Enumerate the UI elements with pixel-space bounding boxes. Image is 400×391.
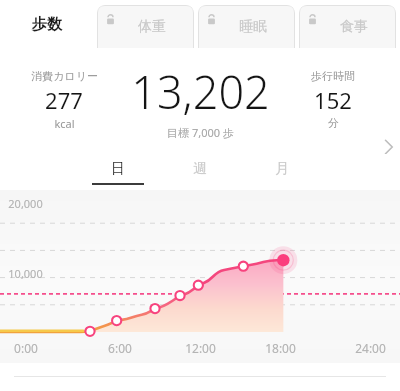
button[interactable]: 体重 [97,5,194,48]
staticText: 18:00 [265,340,296,356]
staticText: 0:00 [14,340,38,356]
staticText: 152 [314,85,352,115]
staticText: 277 [45,85,83,115]
staticText: 睡眠 [239,18,267,36]
staticText: 目標 7,000 歩 [167,125,234,140]
button[interactable]: 月 [256,154,308,190]
staticText: 体重 [138,18,166,36]
button[interactable]: 食事 [299,5,396,48]
staticText: 24:00 [355,340,386,356]
button[interactable]: 消費カロリー [14,69,114,131]
button[interactable]: 週 [174,154,226,190]
staticText: 20,000 [8,196,43,211]
staticText: 分 [328,116,339,130]
staticText: 6:00 [108,340,132,356]
staticText: 月 [275,160,289,178]
staticText: 歩数 [32,15,62,34]
staticText: 12:00 [185,340,216,356]
staticText: 10,000 [8,266,43,281]
staticText: 週 [193,160,207,178]
button[interactable]: 歩行時間 [288,69,378,130]
button[interactable]: 詳細へ [378,136,400,158]
button[interactable]: 日 [92,154,144,190]
button[interactable]: 13,202 [0,61,400,140]
button[interactable]: 歩数 [0,0,93,48]
button[interactable]: 睡眠 [198,5,295,48]
staticText: 消費カロリー [31,69,98,83]
staticText: 13,202 [131,61,270,122]
staticText: kcal [54,116,75,131]
staticText: 歩行時間 [311,69,355,83]
staticText: 日 [111,160,125,178]
staticText: 食事 [340,18,368,36]
